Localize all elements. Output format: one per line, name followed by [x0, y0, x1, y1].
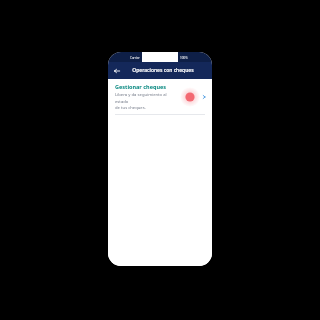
staticText: Gestionar cheques [115, 83, 167, 90]
button[interactable]: Back [112, 66, 122, 76]
button[interactable]: Gestionar cheques [108, 79, 212, 114]
other: Open [200, 93, 208, 101]
staticText: Carrier [130, 56, 140, 60]
staticText: Operaciones con cheques [132, 67, 194, 74]
staticText: 100% [180, 56, 188, 60]
staticText: Libera y da seguimiento al estado de tus… [115, 92, 180, 110]
